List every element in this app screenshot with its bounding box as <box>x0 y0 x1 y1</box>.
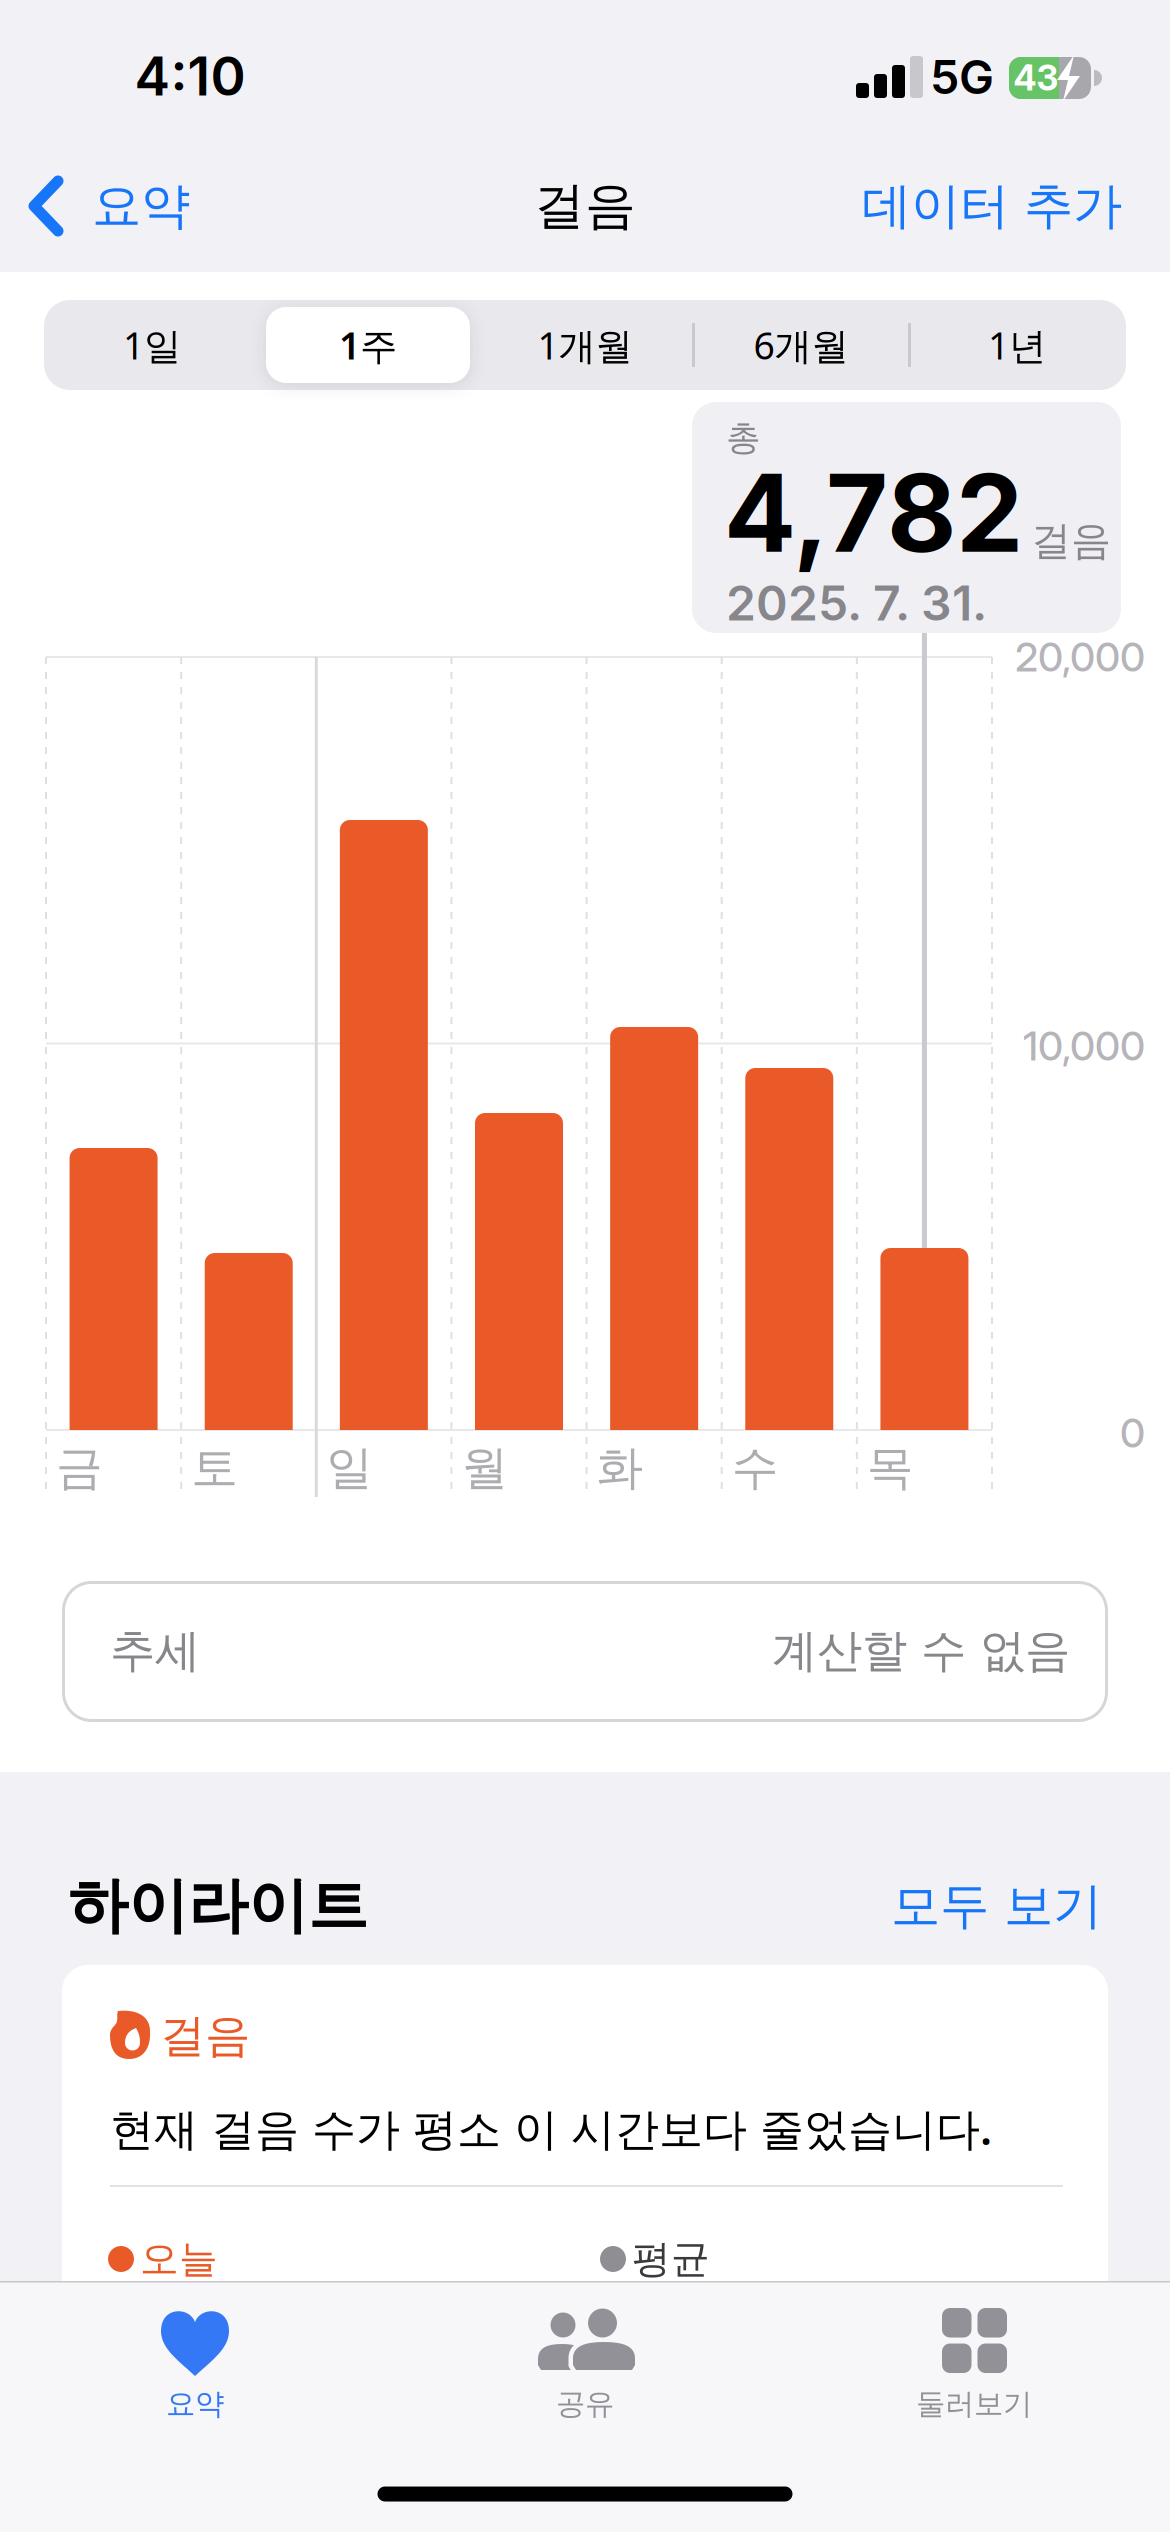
staticText: 요약 <box>166 2386 224 2422</box>
staticText: 1주 <box>339 320 397 370</box>
button[interactable]: 1일 <box>47 300 257 390</box>
staticText: 1년 <box>988 320 1046 370</box>
staticText: 20,000 <box>1015 633 1145 681</box>
staticText: 43 <box>1013 57 1058 99</box>
staticText: 걸음 <box>534 175 636 237</box>
button[interactable]: 1주 <box>263 300 473 390</box>
button[interactable]: 둘러보기 <box>844 2286 1104 2446</box>
staticText: 걸음 <box>160 2008 250 2064</box>
button[interactable]: 데이터 추가 <box>702 156 1122 256</box>
button[interactable]: 모두 보기 <box>802 1866 1102 1946</box>
staticText: 10,000 <box>1023 1022 1145 1070</box>
button[interactable]: 요약 <box>65 2286 325 2446</box>
button[interactable]: 6개월 <box>696 300 906 390</box>
staticText: 목 <box>867 1439 914 1497</box>
staticText: 데이터 추가 <box>862 176 1122 236</box>
staticText: 6개월 <box>753 320 848 370</box>
staticText: 2025. 7. 31. <box>726 574 987 632</box>
staticText: 걸음 <box>1031 516 1111 565</box>
button[interactable]: 걸음 <box>62 1965 1108 2350</box>
staticText: 금 <box>56 1439 103 1497</box>
staticText: 모두 보기 <box>891 1876 1102 1936</box>
staticText: 5G <box>930 49 994 105</box>
staticText: 화 <box>597 1439 644 1497</box>
staticText: 요약 <box>92 176 190 236</box>
staticText: 4,782 <box>724 448 1023 578</box>
staticText: 계산할 수 없음 <box>772 1623 1070 1679</box>
staticText: 오늘 <box>140 2235 218 2283</box>
button[interactable]: 1개월 <box>480 300 690 390</box>
staticText: 추세 <box>110 1623 200 1679</box>
staticText: 일 <box>326 1439 373 1497</box>
staticText: 평균 <box>632 2235 710 2283</box>
staticText: 총 <box>726 417 761 459</box>
staticText: 수 <box>732 1439 779 1497</box>
button[interactable]: 공유 <box>455 2286 715 2446</box>
staticText: 1개월 <box>537 320 632 370</box>
staticText: 토 <box>191 1439 238 1497</box>
button[interactable]: 요약으로 돌아가기 <box>28 156 278 256</box>
staticText: 현재 걸음 수가 평소 이 시간보다 줄었습니다. <box>110 2099 992 2157</box>
staticText: 하이라이트 <box>68 1869 368 1943</box>
staticText: 4:10 <box>134 44 245 108</box>
staticText: 월 <box>461 1439 508 1497</box>
button[interactable]: 1년 <box>912 300 1122 390</box>
staticText: 둘러보기 <box>916 2386 1032 2422</box>
staticText: 공유 <box>556 2386 614 2422</box>
staticText: 1일 <box>123 320 181 370</box>
staticText: 0 <box>1120 1409 1145 1457</box>
